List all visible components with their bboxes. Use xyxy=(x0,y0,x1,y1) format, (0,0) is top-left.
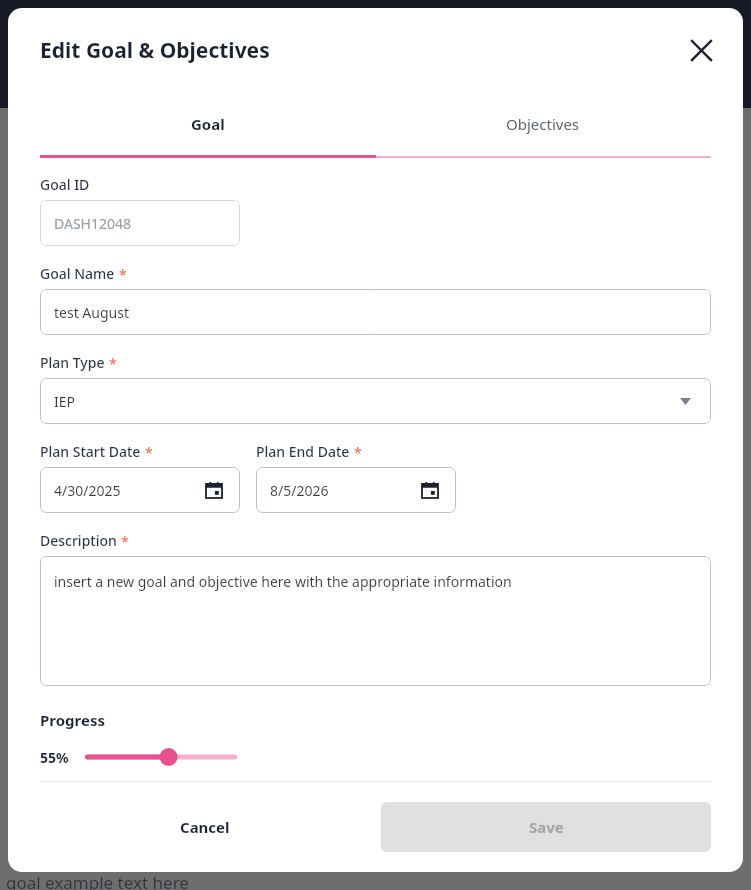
other: Pick start date xyxy=(202,478,226,502)
staticText: Goal ID xyxy=(40,175,90,194)
staticText: Goal xyxy=(191,114,225,134)
other: Open plan type menu xyxy=(673,389,697,413)
staticText: insert a new goal and objective here wit… xyxy=(54,572,512,591)
staticText: * xyxy=(119,265,127,284)
button[interactable]: 4/30/2025 xyxy=(40,467,240,513)
staticText: * xyxy=(121,532,129,551)
staticText: DASH12048 xyxy=(54,214,131,233)
staticText: Save xyxy=(529,817,564,837)
staticText: Edit Goal & Objectives xyxy=(40,36,270,65)
staticText: Plan End Date xyxy=(256,442,350,461)
staticText: Plan Type xyxy=(40,353,105,372)
button[interactable]: Objectives xyxy=(375,92,711,156)
staticText: test August xyxy=(54,303,129,322)
staticText: Progress xyxy=(40,710,105,730)
button[interactable]: insert a new goal and objective here wit… xyxy=(40,556,711,686)
staticText: * xyxy=(354,443,362,462)
button[interactable]: Cancel xyxy=(40,802,369,852)
button[interactable]: Goal xyxy=(40,92,375,156)
staticText: Cancel xyxy=(180,817,230,837)
button[interactable]: Close xyxy=(681,30,721,70)
button[interactable]: test August xyxy=(40,289,711,335)
staticText: * xyxy=(109,354,117,373)
button[interactable]: IEP xyxy=(40,378,711,424)
staticText: Plan Start Date xyxy=(40,442,141,461)
button[interactable]: DASH12048 xyxy=(40,200,240,246)
staticText: Objectives xyxy=(506,114,580,134)
staticText: goal example text here xyxy=(6,871,189,890)
staticText: Goal Name xyxy=(40,264,115,283)
button[interactable]: 8/5/2026 xyxy=(256,467,456,513)
staticText: Description xyxy=(40,531,117,550)
staticText: 8/5/2026 xyxy=(270,481,329,500)
other: Pick end date xyxy=(418,478,442,502)
staticText: 4/30/2025 xyxy=(54,481,121,500)
button[interactable]: Progress 55 percent xyxy=(85,746,237,768)
staticText: IEP xyxy=(54,392,75,411)
staticText: * xyxy=(145,443,153,462)
staticText: 55% xyxy=(40,748,69,767)
button[interactable]: Save xyxy=(381,802,711,852)
